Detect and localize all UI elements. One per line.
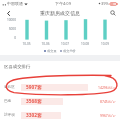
staticText: 0 xyxy=(0,36,16,40)
staticText: 3302套 xyxy=(26,112,42,119)
staticText: 渝北区 xyxy=(4,85,15,90)
staticText: 5000 xyxy=(0,27,16,31)
staticText: 10-08 xyxy=(75,42,95,46)
staticText: 重庆新房成交信息 xyxy=(40,10,80,16)
staticText: 10-07 xyxy=(55,42,75,46)
staticText: 10000 xyxy=(0,18,16,22)
staticText: 8745元/㎡ xyxy=(100,99,116,104)
staticText: 巴南 xyxy=(4,99,12,104)
staticText: 3568套 xyxy=(26,98,42,105)
staticText: 区县成交排行 xyxy=(4,64,31,70)
button[interactable]: Back xyxy=(0,7,16,19)
button[interactable]: 沙坪坝 xyxy=(0,109,120,120)
staticText: 39% xyxy=(101,1,109,6)
staticText: 10-06 xyxy=(36,42,55,46)
staticText: 下午4:09 xyxy=(55,1,71,6)
button[interactable]: 渝北区 xyxy=(0,81,120,93)
button[interactable]: 巴南 xyxy=(0,95,120,107)
staticText: 9967元/㎡ xyxy=(100,113,116,118)
staticText: 10-05 xyxy=(17,42,36,46)
staticText: 中国联通 xyxy=(7,1,23,6)
button[interactable]: 区县成交排行 xyxy=(0,61,120,72)
staticText: 10-09 xyxy=(95,42,115,46)
staticText: 14296元/㎡ xyxy=(98,85,116,90)
staticText: 成交均价 xyxy=(63,49,76,53)
button[interactable]: Search xyxy=(106,7,120,19)
staticText: 沙坪坝 xyxy=(4,113,15,118)
staticText: 成交量 xyxy=(47,49,57,53)
staticText: 5907套 xyxy=(26,84,42,91)
